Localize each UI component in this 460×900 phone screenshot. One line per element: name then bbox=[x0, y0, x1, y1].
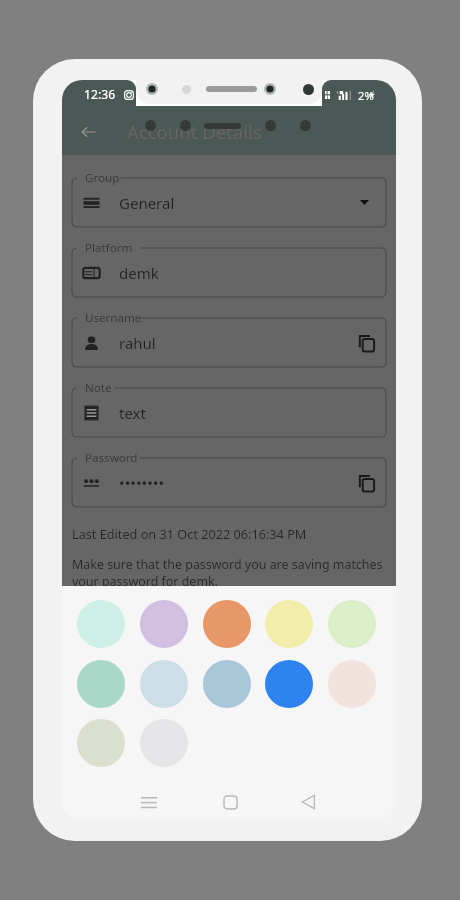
staticText: 2% bbox=[358, 88, 374, 103]
button[interactable]: Colour 10 bbox=[328, 660, 376, 708]
staticText: rahul bbox=[119, 333, 156, 353]
button[interactable]: Colour 12 bbox=[140, 719, 188, 767]
button[interactable]: Colour 8 bbox=[203, 660, 251, 708]
button[interactable]: Copy Username bbox=[347, 324, 385, 362]
staticText: demk bbox=[119, 263, 159, 283]
button[interactable]: Group bbox=[72, 178, 386, 227]
staticText: Group bbox=[85, 170, 120, 186]
button[interactable]: Colour 1 bbox=[77, 600, 125, 648]
button[interactable]: Note bbox=[72, 388, 386, 437]
staticText: Platform bbox=[85, 240, 133, 256]
staticText: text bbox=[119, 403, 146, 423]
staticText: Make sure that the password you are savi… bbox=[72, 556, 390, 590]
staticText: General bbox=[119, 193, 175, 213]
button[interactable]: Username bbox=[72, 318, 386, 367]
button[interactable]: Colour 5 bbox=[328, 600, 376, 648]
staticText: Username bbox=[85, 310, 142, 326]
button[interactable]: Colour 3 bbox=[203, 600, 251, 648]
button[interactable]: Colour 9 bbox=[265, 660, 313, 708]
button[interactable]: Colour 2 bbox=[140, 600, 188, 648]
staticText: Password bbox=[85, 450, 138, 466]
button[interactable]: Password bbox=[72, 458, 386, 507]
staticText: 12:36 bbox=[84, 86, 116, 103]
staticText: Account Details bbox=[127, 119, 262, 144]
button[interactable]: Colour 7 bbox=[140, 660, 188, 708]
button[interactable]: Platform bbox=[72, 248, 386, 297]
button[interactable]: Colour 4 bbox=[265, 600, 313, 648]
staticText: Last Edited on 31 Oct 2022 06:16:34 PM bbox=[72, 525, 307, 542]
staticText: •••••••• bbox=[119, 473, 165, 493]
button[interactable]: Home bbox=[210, 782, 250, 820]
button[interactable]: Colour 11 bbox=[77, 719, 125, 767]
button[interactable]: Copy Password bbox=[347, 464, 385, 502]
staticText: Note bbox=[85, 380, 112, 396]
button[interactable]: Recent apps bbox=[129, 782, 169, 820]
button[interactable]: Back bbox=[62, 108, 109, 155]
button[interactable]: Back bbox=[288, 782, 328, 820]
button[interactable]: Colour 6 bbox=[77, 660, 125, 708]
